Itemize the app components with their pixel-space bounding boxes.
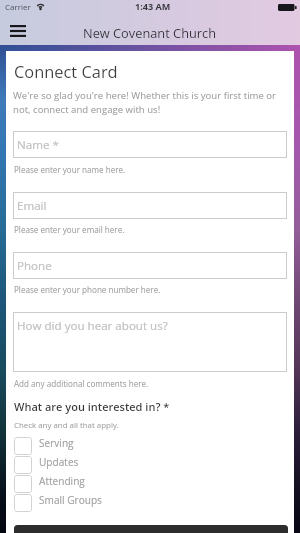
button[interactable]: Attending — [14, 474, 288, 493]
staticText: Carrier — [5, 1, 31, 12]
staticText: Name * — [17, 137, 59, 153]
button[interactable]: Small Groups — [14, 493, 288, 512]
staticText: Attending — [39, 474, 85, 488]
staticText: Serving — [39, 436, 74, 450]
button[interactable]: Open navigation menu — [1, 20, 33, 45]
staticText: Updates — [39, 455, 79, 469]
staticText: What are you interested in? * — [14, 399, 170, 414]
staticText: Small Groups — [39, 493, 102, 507]
button[interactable]: Serving — [14, 436, 288, 455]
staticText: Phone — [17, 258, 52, 274]
button[interactable]: Submit — [14, 525, 288, 533]
staticText: Add any additional comments here. — [14, 378, 149, 389]
staticText: Please enter your name here. — [14, 164, 126, 175]
button[interactable]: How did you hear about us? — [13, 312, 287, 372]
staticText: Check any and all that apply. — [14, 420, 119, 431]
button[interactable]: Name * — [13, 131, 287, 158]
staticText: How did you hear about us? — [17, 318, 168, 334]
staticText: Connect Card — [14, 60, 118, 82]
button[interactable]: Phone — [13, 252, 287, 279]
staticText: We're so glad you're here! Whether this … — [13, 89, 287, 116]
staticText: Please enter your phone number here. — [14, 284, 161, 295]
staticText: 1:43 AM — [135, 0, 171, 12]
staticText: Please enter your email here. — [14, 224, 125, 235]
staticText: Email — [17, 198, 47, 214]
button[interactable]: Updates — [14, 455, 288, 474]
staticText: New Covenant Church — [83, 24, 217, 41]
button[interactable]: Email — [13, 192, 287, 219]
